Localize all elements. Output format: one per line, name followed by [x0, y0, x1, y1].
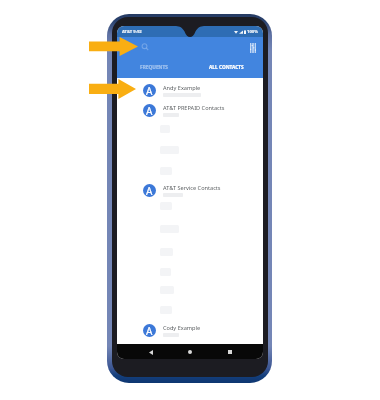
button[interactable]: Back — [145, 346, 157, 358]
button[interactable]: A — [117, 180, 263, 200]
other: Step 2 — [89, 79, 136, 99]
button[interactable]: Recents — [224, 346, 236, 358]
staticText: Cody Example — [163, 324, 201, 332]
staticText: AT&T 9:92 — [122, 29, 142, 35]
button[interactable]: Tune — [246, 41, 260, 55]
button[interactable]: FREQUENTS — [117, 57, 190, 78]
staticText: ALL CONTACTS — [209, 64, 244, 71]
button[interactable]: A — [117, 320, 263, 340]
staticText: 100% — [247, 29, 258, 35]
staticText: A — [146, 184, 153, 197]
staticText: Andy Example — [163, 84, 201, 92]
other: Step 1 — [89, 37, 138, 56]
button[interactable]: Home — [184, 346, 196, 358]
button[interactable]: ALL CONTACTS — [190, 57, 263, 78]
staticText: AT&T Service Contacts — [163, 184, 221, 192]
staticText: FREQUENTS — [140, 64, 168, 71]
button[interactable]: A — [117, 100, 263, 120]
staticText: AT&T PREPAID Contacts — [163, 104, 225, 112]
staticText: A — [146, 324, 153, 337]
staticText: A — [146, 104, 153, 117]
button[interactable]: A — [117, 80, 263, 100]
staticText: A — [146, 84, 153, 97]
button[interactable]: Search — [138, 40, 152, 54]
